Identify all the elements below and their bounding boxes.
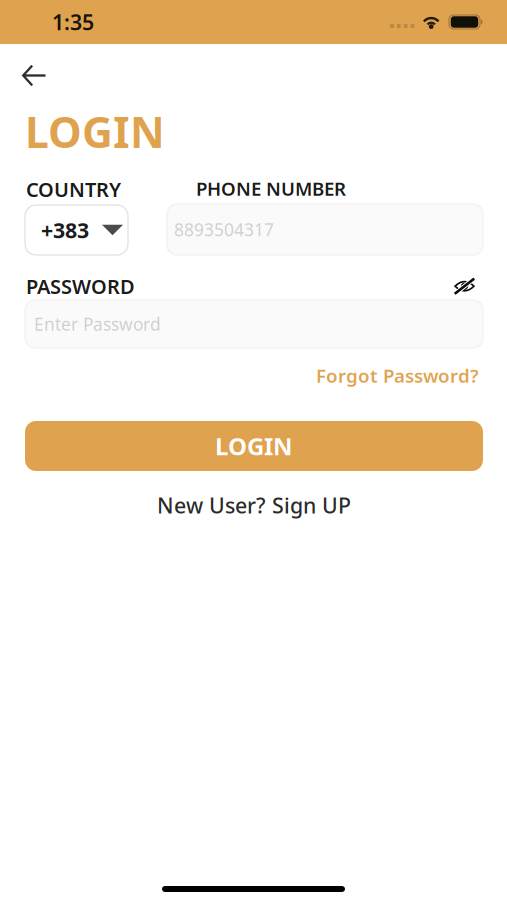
button[interactable]: Back — [10, 53, 59, 98]
button[interactable]: Enter Password — [25, 300, 483, 348]
staticText: +383 — [41, 216, 89, 244]
staticText: Forgot Password? — [316, 363, 479, 388]
staticText: New User? Sign UP — [157, 491, 351, 519]
button[interactable]: New User? Sign UP — [151, 486, 357, 524]
staticText: PHONE NUMBER — [196, 176, 346, 201]
button[interactable]: Forgot Password? — [310, 358, 485, 393]
staticText: COUNTRY — [26, 176, 121, 203]
button[interactable]: LOGIN — [25, 421, 483, 471]
staticText: PASSWORD — [26, 273, 135, 300]
staticText: 1:35 — [52, 8, 94, 36]
button[interactable]: Show password — [445, 272, 484, 301]
staticText: Enter Password — [34, 312, 161, 335]
staticText: LOGIN — [25, 103, 165, 160]
button[interactable]: +383 — [25, 205, 128, 255]
button[interactable]: 8893504317 — [167, 204, 483, 255]
staticText: 8893504317 — [174, 218, 274, 241]
staticText: LOGIN — [215, 430, 293, 462]
